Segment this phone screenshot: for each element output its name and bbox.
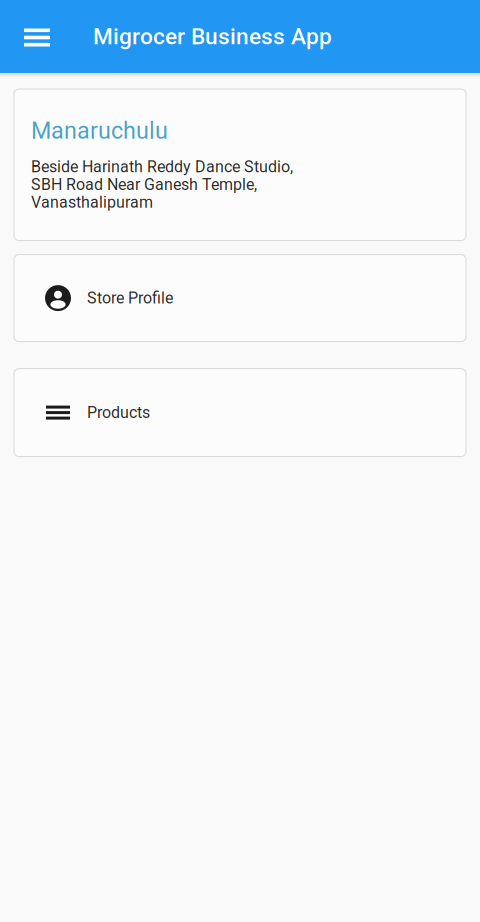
staticText: Vanasthalipuram (31, 193, 153, 212)
button[interactable]: Menu (12, 11, 62, 61)
staticText: Manaruchulu (31, 117, 168, 144)
staticText: Store Profile (87, 289, 173, 307)
staticText: Beside Harinath Reddy Dance Studio, (31, 157, 293, 176)
button[interactable]: Store Profile (14, 255, 466, 342)
button[interactable]: Products (14, 369, 466, 457)
staticText: Migrocer Business App (93, 23, 332, 50)
staticText: SBH Road Near Ganesh Temple, (31, 175, 257, 194)
staticText: Products (87, 403, 150, 422)
